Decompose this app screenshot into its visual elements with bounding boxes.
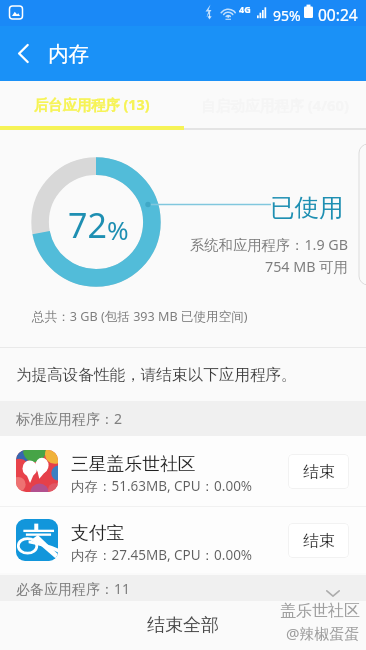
- staticText: 内存：27.45MB, CPU：0.00%: [71, 546, 253, 564]
- button[interactable]: 结束全部: [0, 601, 366, 650]
- staticText: 72: [68, 202, 107, 248]
- staticText: 结束全部: [147, 614, 219, 637]
- staticText: 内存: [48, 41, 89, 67]
- staticText: %: [107, 212, 129, 247]
- staticText: 标准应用程序：2: [16, 409, 123, 428]
- button[interactable]: 三星盖乐世社区: [0, 436, 366, 506]
- staticText: 盖乐世社区: [280, 601, 360, 621]
- staticText: 结束: [303, 462, 335, 482]
- staticText: 为提高设备性能，请结束以下应用程序。: [16, 365, 297, 385]
- staticText: 754 MB 可用: [265, 257, 348, 277]
- staticText: 00:24: [318, 4, 358, 25]
- staticText: 4G: [239, 3, 251, 15]
- button[interactable]: 结束: [288, 454, 349, 489]
- staticText: 内存：51.63MB, CPU：0.00%: [71, 477, 253, 495]
- button[interactable]: Back: [3, 33, 44, 74]
- button[interactable]: 自启动应用程序 (4/60): [183, 81, 366, 130]
- staticText: 系统和应用程序：1.9 GB: [190, 235, 348, 255]
- staticText: 95%: [273, 6, 301, 25]
- staticText: 支付宝: [71, 522, 125, 544]
- staticText: 已使用: [270, 192, 344, 223]
- staticText: 后台应用程序 (13): [34, 95, 150, 115]
- staticText: 三星盖乐世社区: [71, 453, 196, 475]
- button[interactable]: 后台应用程序 (13): [0, 81, 183, 130]
- button[interactable]: 支付宝: [0, 507, 366, 573]
- staticText: 总共：3 GB (包括 393 MB 已使用空间): [32, 308, 248, 325]
- staticText: @辣椒蛋蛋: [286, 623, 360, 643]
- staticText: 必备应用程序：11: [16, 579, 131, 598]
- staticText: 结束: [303, 531, 335, 551]
- button[interactable]: 结束: [288, 523, 349, 558]
